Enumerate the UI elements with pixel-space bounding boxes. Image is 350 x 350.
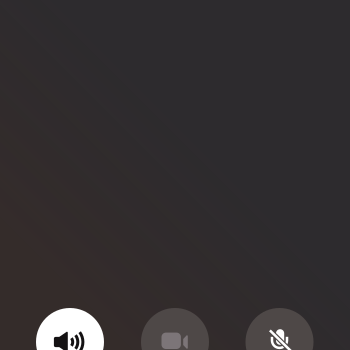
button[interactable]: Turn Camera Off [141, 308, 209, 350]
button[interactable]: Speaker [36, 308, 104, 350]
button[interactable]: Unmute [245, 308, 313, 350]
